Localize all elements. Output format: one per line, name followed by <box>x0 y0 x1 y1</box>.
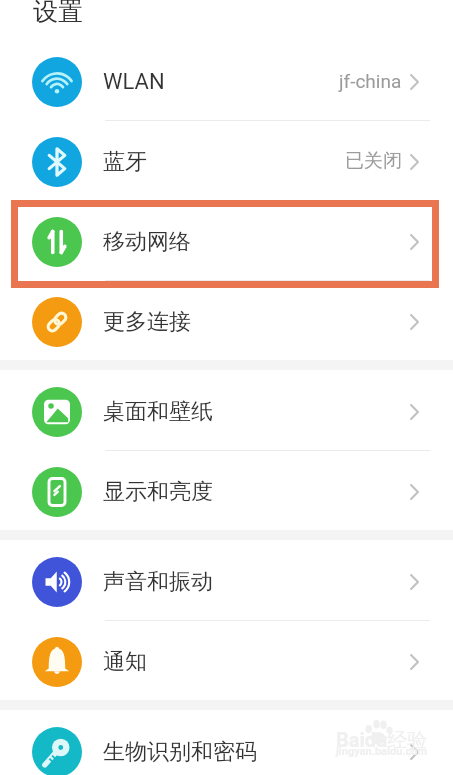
button[interactable]: 生物识别和密码 <box>0 710 453 775</box>
staticText: Baidu经验 <box>336 728 428 753</box>
staticText: 设置 <box>33 0 83 27</box>
staticText: 生物识别和密码 <box>103 738 257 766</box>
button[interactable]: WLAN <box>0 40 453 120</box>
staticText: 通知 <box>103 648 147 676</box>
staticText: 桌面和壁纸 <box>103 398 213 426</box>
button[interactable]: 通知 <box>0 620 453 700</box>
staticText: jf-china <box>339 70 402 92</box>
staticText: 显示和亮度 <box>103 478 213 506</box>
staticText: 蓝牙 <box>103 148 147 176</box>
staticText: jingyan.baidu.com <box>336 745 427 758</box>
button[interactable]: 移动网络 <box>0 200 453 280</box>
button[interactable]: 显示和亮度 <box>0 450 453 530</box>
button[interactable]: 桌面和壁纸 <box>0 370 453 450</box>
staticText: 已关闭 <box>345 149 402 173</box>
staticText: 移动网络 <box>103 228 191 256</box>
button[interactable]: 蓝牙 <box>0 120 453 200</box>
staticText: 更多连接 <box>103 308 191 336</box>
staticText: 声音和振动 <box>103 568 213 596</box>
button[interactable]: 声音和振动 <box>0 540 453 620</box>
staticText: WLAN <box>103 69 165 95</box>
button[interactable]: 更多连接 <box>0 280 453 360</box>
